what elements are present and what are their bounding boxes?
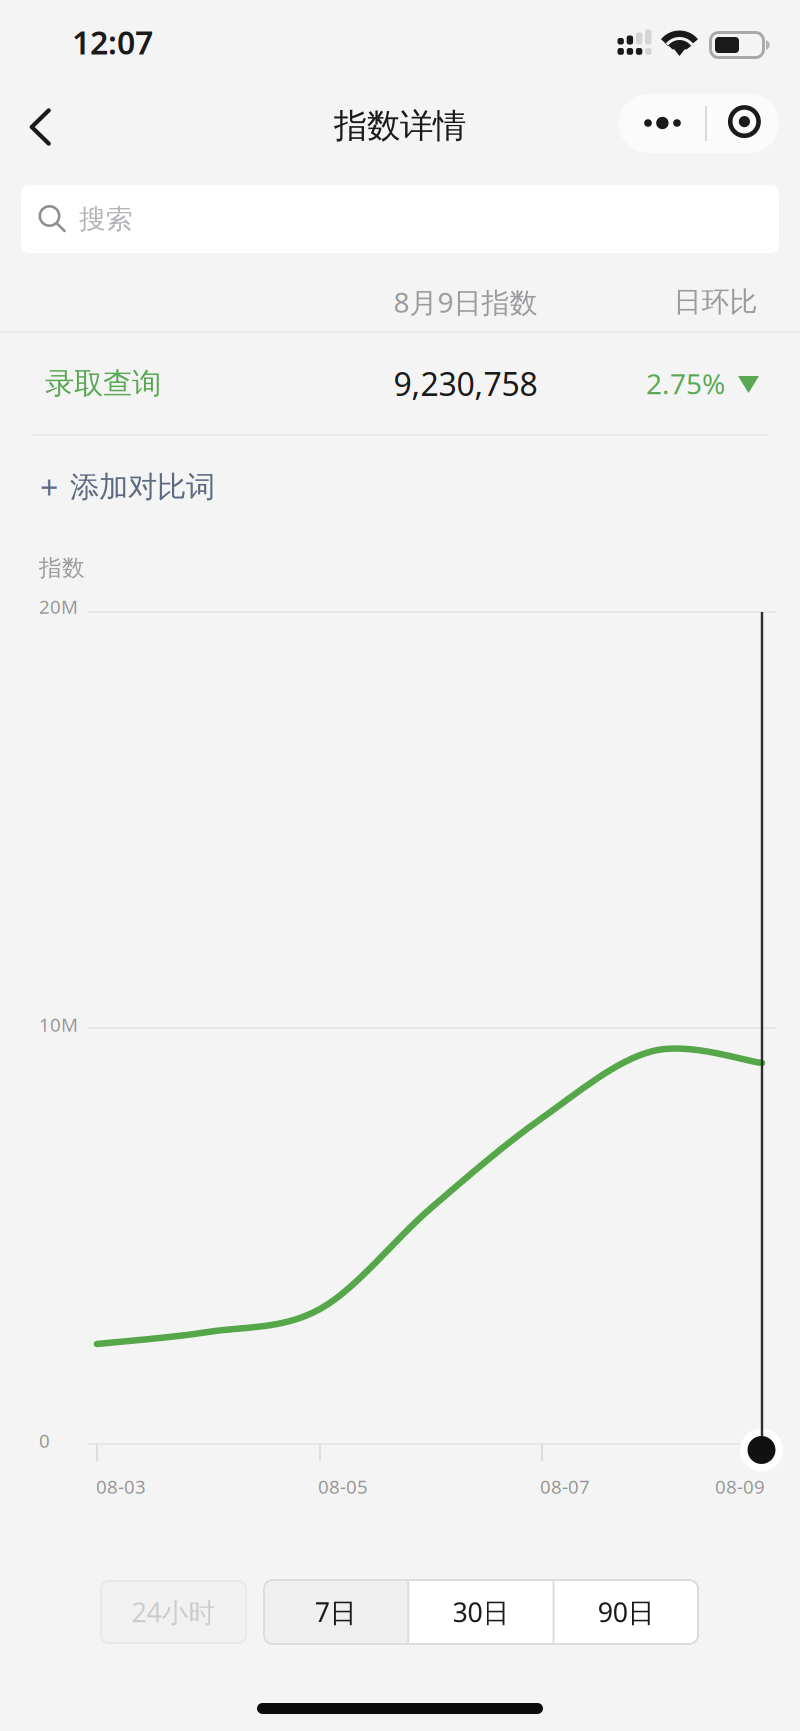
staticText: 录取查询 bbox=[45, 365, 161, 401]
staticText: 12:07 bbox=[72, 21, 153, 63]
button[interactable]: 24小时 bbox=[101, 1581, 246, 1643]
staticText: 08-07 bbox=[540, 1474, 590, 1499]
staticText: 8月9日指数 bbox=[393, 283, 537, 321]
staticText: 20M bbox=[39, 594, 78, 619]
staticText: 2.75% bbox=[646, 365, 725, 402]
button[interactable]: 更多 bbox=[619, 94, 779, 153]
staticText: 0 bbox=[39, 1428, 50, 1453]
staticText: 9,230,758 bbox=[393, 362, 537, 405]
staticText: + bbox=[40, 466, 58, 508]
button[interactable]: 搜索 bbox=[21, 185, 779, 253]
button[interactable]: 90日 bbox=[555, 1580, 698, 1644]
button[interactable]: 30日 bbox=[409, 1580, 553, 1644]
staticText: 添加对比词 bbox=[70, 469, 215, 505]
staticText: 08-03 bbox=[96, 1474, 146, 1499]
staticText: 7日 bbox=[315, 1594, 357, 1630]
staticText: 30日 bbox=[452, 1594, 509, 1630]
staticText: 指数详情 bbox=[334, 105, 466, 146]
button[interactable]: 返回 bbox=[0, 92, 80, 180]
staticText: 08-09 bbox=[715, 1474, 765, 1499]
staticText: 10M bbox=[39, 1012, 78, 1037]
button[interactable]: + bbox=[0, 444, 460, 530]
staticText: 24小时 bbox=[131, 1594, 215, 1630]
staticText: 90日 bbox=[598, 1594, 655, 1630]
staticText: 搜索 bbox=[79, 203, 133, 235]
staticText: 日环比 bbox=[673, 285, 757, 319]
button[interactable]: 7日 bbox=[264, 1580, 407, 1644]
staticText: 08-05 bbox=[318, 1474, 368, 1499]
button[interactable]: 录取查询 bbox=[0, 333, 800, 434]
staticText: 指数 bbox=[39, 554, 85, 582]
